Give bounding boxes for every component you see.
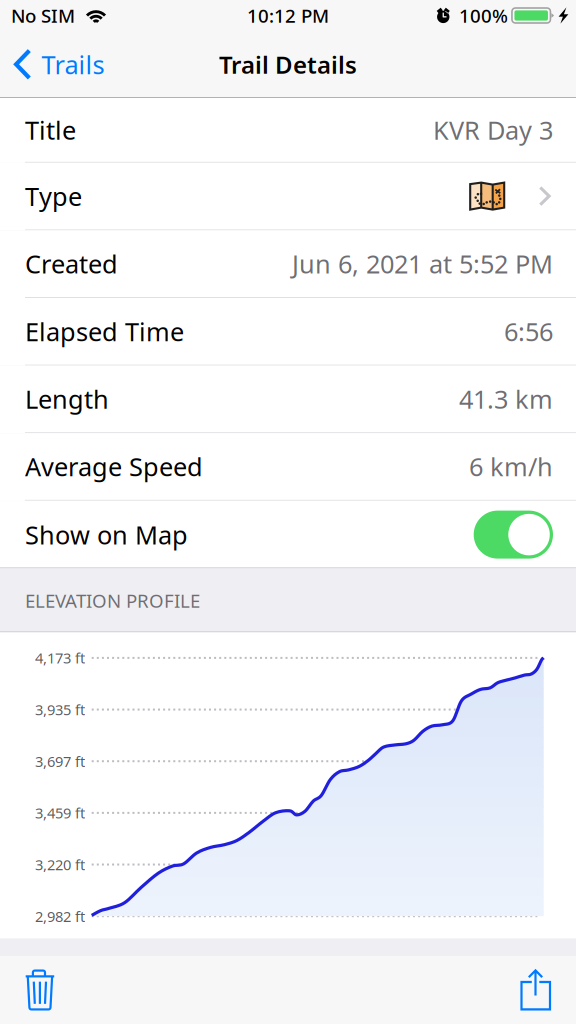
staticText: Trail Details: [219, 49, 357, 80]
staticText: Jun 6, 2021 at 5:52 PM: [292, 247, 553, 280]
staticText: 2,982 ft: [35, 906, 85, 926]
staticText: 3,220 ft: [35, 855, 85, 874]
staticText: 6 km/h: [469, 450, 553, 483]
staticText: 3,935 ft: [35, 700, 85, 719]
staticText: ELEVATION PROFILE: [25, 588, 200, 613]
staticText: Created: [25, 247, 118, 280]
staticText: 3,697 ft: [35, 751, 85, 771]
staticText: Average Speed: [25, 450, 203, 483]
button[interactable]: Delete: [0, 956, 77, 1024]
button[interactable]: Show on Map: [474, 511, 553, 559]
button[interactable]: Type: [0, 163, 576, 230]
staticText: Elapsed Time: [25, 314, 184, 348]
staticText: 10:12 PM: [247, 3, 329, 28]
button[interactable]: Share: [498, 956, 576, 1024]
staticText: 3,459 ft: [35, 803, 85, 823]
staticText: Trails: [41, 48, 104, 81]
staticText: Show on Map: [25, 518, 188, 551]
staticText: 6:56: [504, 314, 553, 348]
staticText: No SIM: [11, 3, 75, 28]
staticText: Type: [25, 179, 82, 213]
staticText: 100%: [459, 3, 508, 28]
staticText: Length: [25, 382, 109, 416]
button[interactable]: Trails: [0, 31, 114, 98]
staticText: 41.3 km: [459, 382, 553, 416]
staticText: Title: [25, 113, 76, 147]
staticText: 4,173 ft: [35, 648, 85, 668]
staticText: KVR Day 3: [433, 113, 553, 147]
